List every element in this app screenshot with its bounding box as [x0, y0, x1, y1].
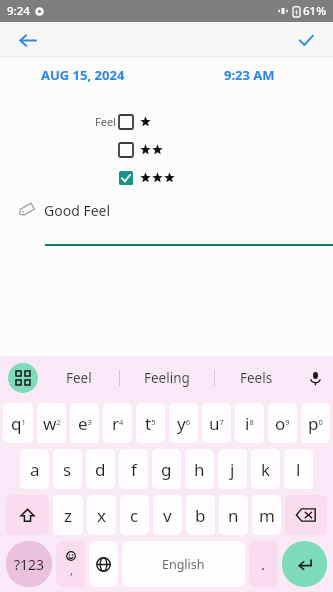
button[interactable]: Voice input	[297, 356, 333, 400]
staticText: u7	[209, 412, 224, 435]
button[interactable]: r4	[103, 403, 132, 443]
button[interactable]: x	[87, 495, 116, 535]
staticText: d	[95, 458, 106, 481]
staticText: k	[261, 458, 271, 481]
button[interactable]: k	[251, 449, 280, 489]
button[interactable]: ?123	[6, 541, 52, 587]
staticText: l	[296, 458, 301, 481]
staticText: g	[161, 458, 172, 481]
staticText: AUG 15, 2024	[41, 66, 125, 84]
button[interactable]: c	[120, 495, 149, 535]
button[interactable]: .	[249, 541, 278, 587]
button[interactable]: y6	[169, 403, 198, 443]
staticText: e3	[78, 412, 92, 435]
staticText: Good Feel	[44, 201, 111, 220]
button[interactable]: Keyboard options	[8, 363, 38, 393]
button[interactable]: Back	[12, 25, 42, 55]
button[interactable]: h	[185, 449, 214, 489]
staticText: ,	[70, 563, 73, 578]
staticText: v	[163, 504, 172, 527]
staticText: p0	[308, 412, 323, 435]
button[interactable]: q1	[3, 403, 33, 443]
button[interactable]: Feels	[215, 356, 297, 400]
button[interactable]: Feel	[0, 113, 333, 130]
button[interactable]: m	[252, 495, 281, 535]
staticText: c	[130, 504, 139, 527]
button[interactable]: b	[186, 495, 215, 535]
staticText: 9:23 AM	[224, 66, 275, 84]
button[interactable]: Change language	[89, 541, 118, 587]
button[interactable]	[0, 141, 333, 158]
staticText: b	[195, 504, 206, 527]
button[interactable]: Shift	[6, 495, 49, 535]
button[interactable]: t5	[136, 403, 165, 443]
staticText: a	[30, 458, 40, 481]
staticText: t5	[145, 412, 156, 435]
button[interactable]: p0	[301, 403, 330, 443]
staticText: Feeling	[144, 369, 190, 387]
staticText: ?123	[14, 555, 45, 574]
staticText: y6	[177, 412, 190, 435]
button[interactable]: g	[152, 449, 181, 489]
staticText: English	[162, 556, 205, 573]
button[interactable]: Backspace	[285, 495, 327, 535]
staticText: 9:24	[7, 3, 30, 19]
staticText: Feel	[95, 114, 116, 129]
staticText: z	[64, 504, 72, 527]
button[interactable]: s	[53, 449, 82, 489]
button[interactable]: f	[119, 449, 148, 489]
staticText: r4	[112, 412, 124, 435]
button[interactable]: English	[122, 541, 245, 587]
button[interactable]: l	[284, 449, 313, 489]
button[interactable]: e3	[70, 403, 99, 443]
staticText: f	[131, 458, 137, 481]
button[interactable]: Feel	[38, 356, 119, 400]
button[interactable]: Tag	[0, 198, 333, 222]
staticText: i8	[245, 412, 254, 435]
staticText: h	[194, 458, 205, 481]
button[interactable]: Enter	[282, 541, 327, 587]
button[interactable]: Save	[291, 25, 321, 55]
button[interactable]: d	[86, 449, 115, 489]
button[interactable]: i8	[235, 403, 264, 443]
staticText: q1	[11, 412, 26, 435]
staticText: w2	[43, 412, 61, 435]
button[interactable]: a	[20, 449, 49, 489]
button[interactable]: w2	[37, 403, 66, 443]
staticText: n	[228, 504, 239, 527]
button[interactable]: n	[219, 495, 248, 535]
other: Tag	[18, 202, 34, 218]
button[interactable]: 9:23 AM	[166, 57, 333, 93]
staticText: m	[259, 504, 275, 527]
button[interactable]: Emoji and comma	[56, 541, 85, 587]
button[interactable]: o9	[268, 403, 297, 443]
button[interactable]: Feeling	[120, 356, 214, 400]
staticText: .	[261, 554, 266, 574]
button[interactable]: j	[218, 449, 247, 489]
staticText: Feels	[240, 369, 273, 387]
staticText: o9	[275, 412, 290, 435]
button[interactable]	[0, 169, 333, 186]
staticText: x	[97, 504, 106, 527]
button[interactable]: u7	[202, 403, 231, 443]
staticText: j	[230, 458, 235, 481]
button[interactable]: z	[53, 495, 83, 535]
button[interactable]: v	[153, 495, 182, 535]
staticText: s	[63, 458, 72, 481]
staticText: 61%	[303, 3, 326, 19]
button[interactable]: AUG 15, 2024	[0, 57, 166, 93]
staticText: Feel	[66, 369, 92, 387]
